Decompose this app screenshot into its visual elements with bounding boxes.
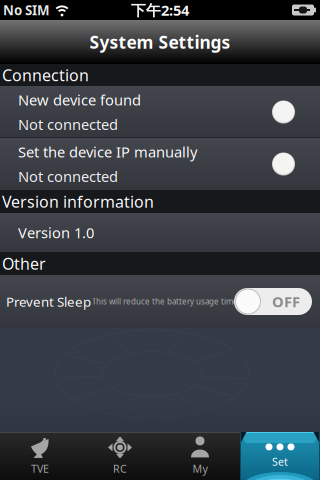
button[interactable]: TVE [0,432,80,480]
staticText: Version information [2,191,154,212]
staticText: Connection [2,64,89,86]
staticText: OFF [272,292,300,311]
staticText: System Settings [89,30,230,53]
button[interactable]: Prevent Sleep [0,275,320,328]
staticText: New device found [18,90,141,109]
staticText: RC [113,461,127,476]
button[interactable]: RC [80,432,160,480]
staticText: This will reduce the battery usage time [92,296,238,307]
staticText: Not connected [18,166,118,186]
button[interactable]: New device found [0,86,320,138]
staticText: 下午2:54 [131,0,189,20]
button[interactable]: Settings tab [240,432,320,480]
button[interactable]: My [160,432,240,480]
staticText: No SIM [3,1,50,19]
staticText: Set the device IP manually [18,142,197,161]
staticText: Set [272,454,288,469]
staticText: Version 1.0 [18,223,94,242]
button[interactable]: Set the device IP manually [0,138,320,190]
staticText: Not connected [18,114,118,134]
staticText: My [192,461,207,476]
staticText: Prevent Sleep [6,293,91,310]
staticText: TVE [31,461,49,476]
staticText: Other [2,253,46,274]
